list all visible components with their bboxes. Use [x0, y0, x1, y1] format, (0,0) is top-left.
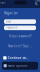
staticText: Password	[5, 26, 17, 29]
staticText: Email	[5, 20, 11, 23]
button[interactable]: More options	[2, 62, 38, 70]
button[interactable]: Forgot password?	[8, 34, 31, 38]
button[interactable]: New here? Sign up	[8, 44, 32, 48]
staticText: Forgot password?	[8, 34, 31, 38]
staticText: More options	[8, 64, 27, 67]
button[interactable]: Continue with Apple	[2, 56, 38, 60]
staticText: New here? Sign up	[8, 44, 32, 48]
button[interactable]: Password	[4, 25, 36, 30]
staticText: Continue with Apple	[8, 56, 28, 60]
staticText: 100%	[35, 0, 40, 6]
button[interactable]: Email	[4, 19, 36, 24]
staticText: Sign in	[4, 10, 18, 15]
staticText: 9:41	[0, 1, 6, 4]
